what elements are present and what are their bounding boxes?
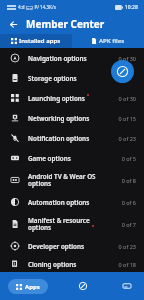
staticText: Android TV & Wear OS options bbox=[28, 172, 96, 188]
button[interactable]: Android TV & Wear OS options bbox=[0, 168, 144, 192]
staticText: Automation options bbox=[28, 198, 90, 207]
staticText: Navigation options bbox=[28, 54, 87, 63]
staticText: 0 of 30 bbox=[112, 95, 136, 102]
staticText: Member Center bbox=[26, 17, 105, 31]
staticText: Game options bbox=[28, 154, 71, 163]
staticText: 0 of 30 bbox=[112, 55, 136, 62]
staticText: Apps bbox=[25, 283, 40, 291]
button[interactable]: Installed apps bbox=[0, 34, 72, 48]
staticText: Launching options bbox=[28, 94, 85, 103]
staticText: 0 of 6 bbox=[112, 199, 136, 206]
staticText: 0 of 8 bbox=[112, 177, 136, 184]
staticText: Storage options bbox=[28, 74, 77, 83]
button[interactable]: Scan bbox=[111, 60, 134, 83]
staticText: 0 of 5 bbox=[112, 155, 136, 162]
button[interactable]: Manifest & resource options bbox=[0, 212, 144, 236]
button[interactable]: Notification options bbox=[0, 128, 144, 148]
staticText: 10:28 bbox=[125, 4, 138, 11]
button[interactable]: Game options bbox=[0, 148, 144, 168]
staticText: 0 of 18 bbox=[112, 261, 136, 268]
staticText: 0 of 15 bbox=[112, 115, 136, 122]
button[interactable]: APK files bbox=[72, 34, 144, 48]
staticText: 0 of 23 bbox=[112, 135, 136, 142]
button[interactable]: Cards bbox=[118, 277, 136, 295]
button[interactable]: Apps bbox=[8, 279, 48, 294]
button[interactable]: Back bbox=[4, 15, 22, 33]
button[interactable]: Cloning options bbox=[0, 256, 144, 272]
button[interactable]: Automation options bbox=[0, 192, 144, 212]
button[interactable]: Launching options bbox=[0, 88, 144, 108]
staticText: Networking options bbox=[28, 114, 90, 123]
button[interactable]: Explore bbox=[74, 277, 92, 295]
staticText: Installed apps bbox=[19, 37, 61, 45]
staticText: 4:d ⊑⊒ P/ 14.3K/s bbox=[18, 4, 56, 10]
staticText: Developer options bbox=[28, 242, 85, 251]
button[interactable]: Networking options bbox=[0, 108, 144, 128]
staticText: Manifest & resource options bbox=[28, 216, 90, 232]
button[interactable]: Storage options bbox=[0, 68, 144, 88]
staticText: 0 of 23 bbox=[112, 243, 136, 250]
staticText: APK files bbox=[99, 37, 125, 45]
staticText: Cloning options bbox=[28, 260, 77, 269]
staticText: Notification options bbox=[28, 134, 90, 143]
staticText: 0 of 7 bbox=[112, 221, 136, 228]
button[interactable]: Developer options bbox=[0, 236, 144, 256]
button[interactable]: Navigation options bbox=[0, 48, 144, 68]
